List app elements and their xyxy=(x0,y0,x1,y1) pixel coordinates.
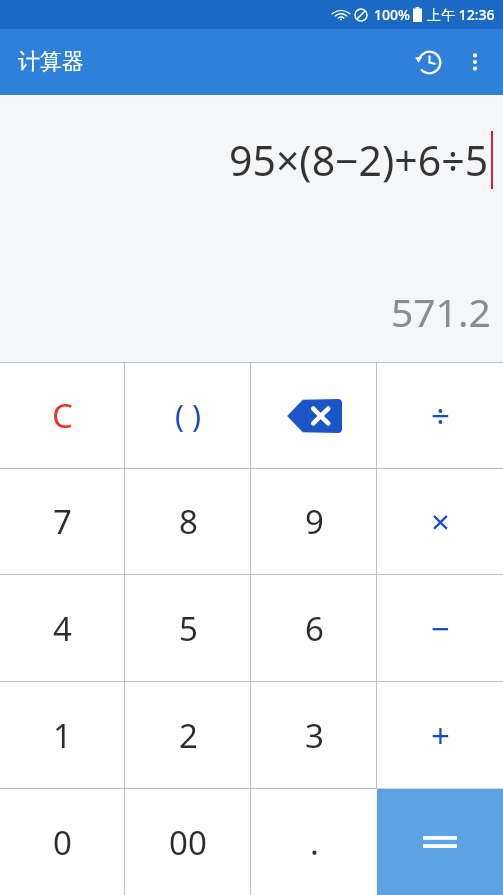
button[interactable]: C xyxy=(0,363,125,468)
button[interactable]: 1 xyxy=(0,682,125,788)
staticText: . xyxy=(310,820,319,865)
button[interactable]: 4 xyxy=(0,575,125,681)
button[interactable]: 8 xyxy=(125,469,251,574)
staticText: 8 xyxy=(179,499,198,544)
staticText: 9 xyxy=(305,499,324,544)
button[interactable]: 7 xyxy=(0,469,125,574)
staticText: + xyxy=(431,713,450,758)
staticText: − xyxy=(431,606,450,651)
staticText: 上午 12:36 xyxy=(427,5,495,24)
staticText: 571.2 xyxy=(391,285,491,338)
staticText: 95×(8−2)+6÷5 xyxy=(229,132,489,188)
button[interactable]: − xyxy=(377,575,503,681)
button[interactable]: More options xyxy=(453,40,497,84)
button[interactable]: ÷ xyxy=(377,363,503,468)
staticText: 4 xyxy=(53,606,72,651)
button[interactable]: 2 xyxy=(125,682,251,788)
button[interactable]: 3 xyxy=(251,682,377,788)
button[interactable]: 9 xyxy=(251,469,377,574)
staticText: ( ) xyxy=(175,395,201,436)
button[interactable]: 00 xyxy=(125,789,251,895)
button[interactable]: . xyxy=(251,789,377,895)
staticText: 00 xyxy=(169,820,207,865)
button[interactable]: 0 xyxy=(0,789,125,895)
button[interactable]: + xyxy=(377,682,503,788)
staticText: × xyxy=(431,499,450,544)
staticText: ÷ xyxy=(431,393,450,438)
staticText: 0 xyxy=(53,820,72,865)
staticText: 3 xyxy=(305,713,324,758)
staticText: 2 xyxy=(179,713,198,758)
button[interactable]: 6 xyxy=(251,575,377,681)
staticText: 计算器 xyxy=(18,48,84,76)
button[interactable]: Backspace xyxy=(251,363,377,468)
button[interactable]: History xyxy=(405,38,453,86)
button[interactable]: × xyxy=(377,469,503,574)
staticText: 6 xyxy=(305,606,324,651)
button[interactable]: ( ) xyxy=(125,363,251,468)
staticText: C xyxy=(52,393,73,438)
button[interactable] xyxy=(377,789,503,895)
staticText: 5 xyxy=(179,606,198,651)
button[interactable]: 5 xyxy=(125,575,251,681)
staticText: 7 xyxy=(53,499,72,544)
staticText: 1 xyxy=(53,713,72,758)
staticText: 100% xyxy=(374,5,410,24)
